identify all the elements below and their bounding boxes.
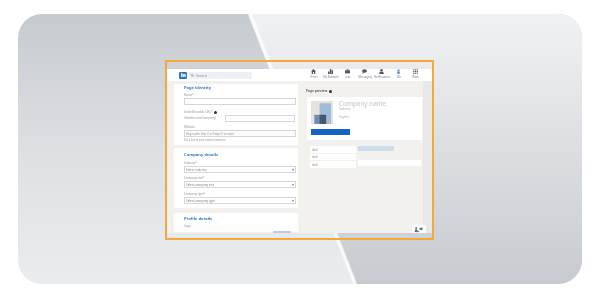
button[interactable]: Search bbox=[189, 72, 252, 79]
staticText: Company type* bbox=[184, 192, 206, 196]
button[interactable]: Me bbox=[390, 69, 407, 79]
staticText: Industry* bbox=[184, 161, 198, 165]
button[interactable]: Jobs bbox=[339, 69, 356, 79]
staticText: Select company size bbox=[186, 183, 215, 187]
staticText: My Network bbox=[323, 75, 339, 79]
staticText: Me bbox=[397, 75, 401, 79]
staticText: Home bbox=[310, 75, 318, 79]
staticText: Work bbox=[412, 75, 419, 79]
staticText: in bbox=[181, 72, 186, 79]
button[interactable]: LinkedIn home bbox=[179, 72, 187, 79]
staticText: Select company type bbox=[186, 199, 216, 203]
staticText: linkedin.com/company/ bbox=[184, 116, 217, 120]
staticText: Website bbox=[184, 125, 195, 129]
button[interactable]: Home bbox=[305, 69, 322, 79]
staticText: Industry bbox=[339, 107, 351, 111]
staticText: Page identity bbox=[184, 85, 212, 91]
button[interactable]: Select company type bbox=[184, 197, 296, 204]
staticText: LinkedIn public URL* bbox=[184, 110, 213, 114]
staticText: Messaging bbox=[358, 75, 372, 79]
staticText: Company details bbox=[184, 152, 219, 158]
button[interactable]: Messaging bbox=[356, 69, 373, 79]
staticText: Tagline bbox=[339, 115, 350, 119]
button[interactable]: Messaging bbox=[412, 225, 426, 233]
staticText: label bbox=[312, 155, 318, 159]
staticText: Page preview bbox=[306, 89, 328, 93]
staticText: Logo bbox=[184, 224, 191, 228]
staticText: label bbox=[312, 148, 318, 152]
button[interactable]: Select industry bbox=[184, 166, 296, 173]
staticText: Company size* bbox=[184, 176, 205, 180]
staticText: label bbox=[312, 163, 318, 167]
button[interactable]: Work bbox=[407, 69, 424, 79]
button[interactable]: Notifications bbox=[373, 69, 390, 79]
staticText: Name* bbox=[184, 93, 194, 97]
staticText: Notifications bbox=[374, 75, 390, 79]
button[interactable]: My Network bbox=[322, 69, 339, 79]
staticText: Begin with http:// or https:// or more bbox=[186, 132, 235, 136]
staticText: Jobs bbox=[345, 75, 351, 79]
staticText: Profile details bbox=[184, 216, 213, 222]
staticText: Company name bbox=[339, 99, 387, 108]
button[interactable]: Select company size bbox=[184, 181, 296, 188]
staticText: Select industry bbox=[186, 168, 207, 172]
staticText: Put a link to your external website bbox=[184, 138, 226, 142]
staticText: Search bbox=[196, 73, 207, 78]
